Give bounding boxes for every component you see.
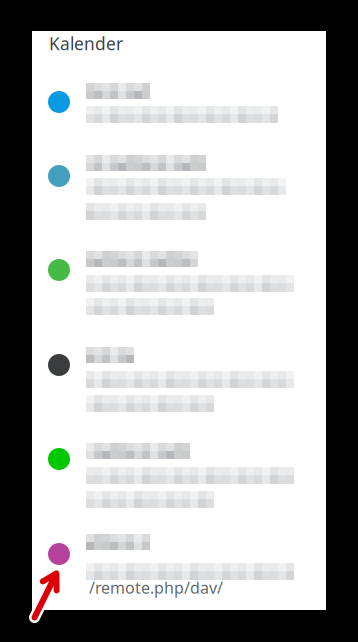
staticText: /remote.php/dav/: [89, 577, 223, 598]
staticText: Kalender: [49, 32, 123, 55]
